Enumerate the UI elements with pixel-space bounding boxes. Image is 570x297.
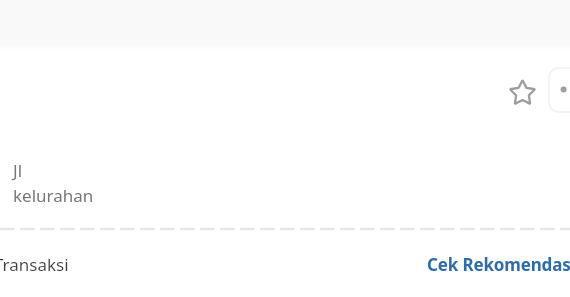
staticText: Transaksi [0,253,69,276]
button[interactable]: More options [549,68,570,112]
staticText: kelurahan [13,184,94,207]
button[interactable]: Transaksi [0,245,69,283]
button[interactable]: Favorite [505,76,540,111]
staticText: Jl [13,159,23,182]
button[interactable]: Cek Rekomendasi [427,245,570,283]
staticText: Cek Rekomendasi [427,253,570,276]
